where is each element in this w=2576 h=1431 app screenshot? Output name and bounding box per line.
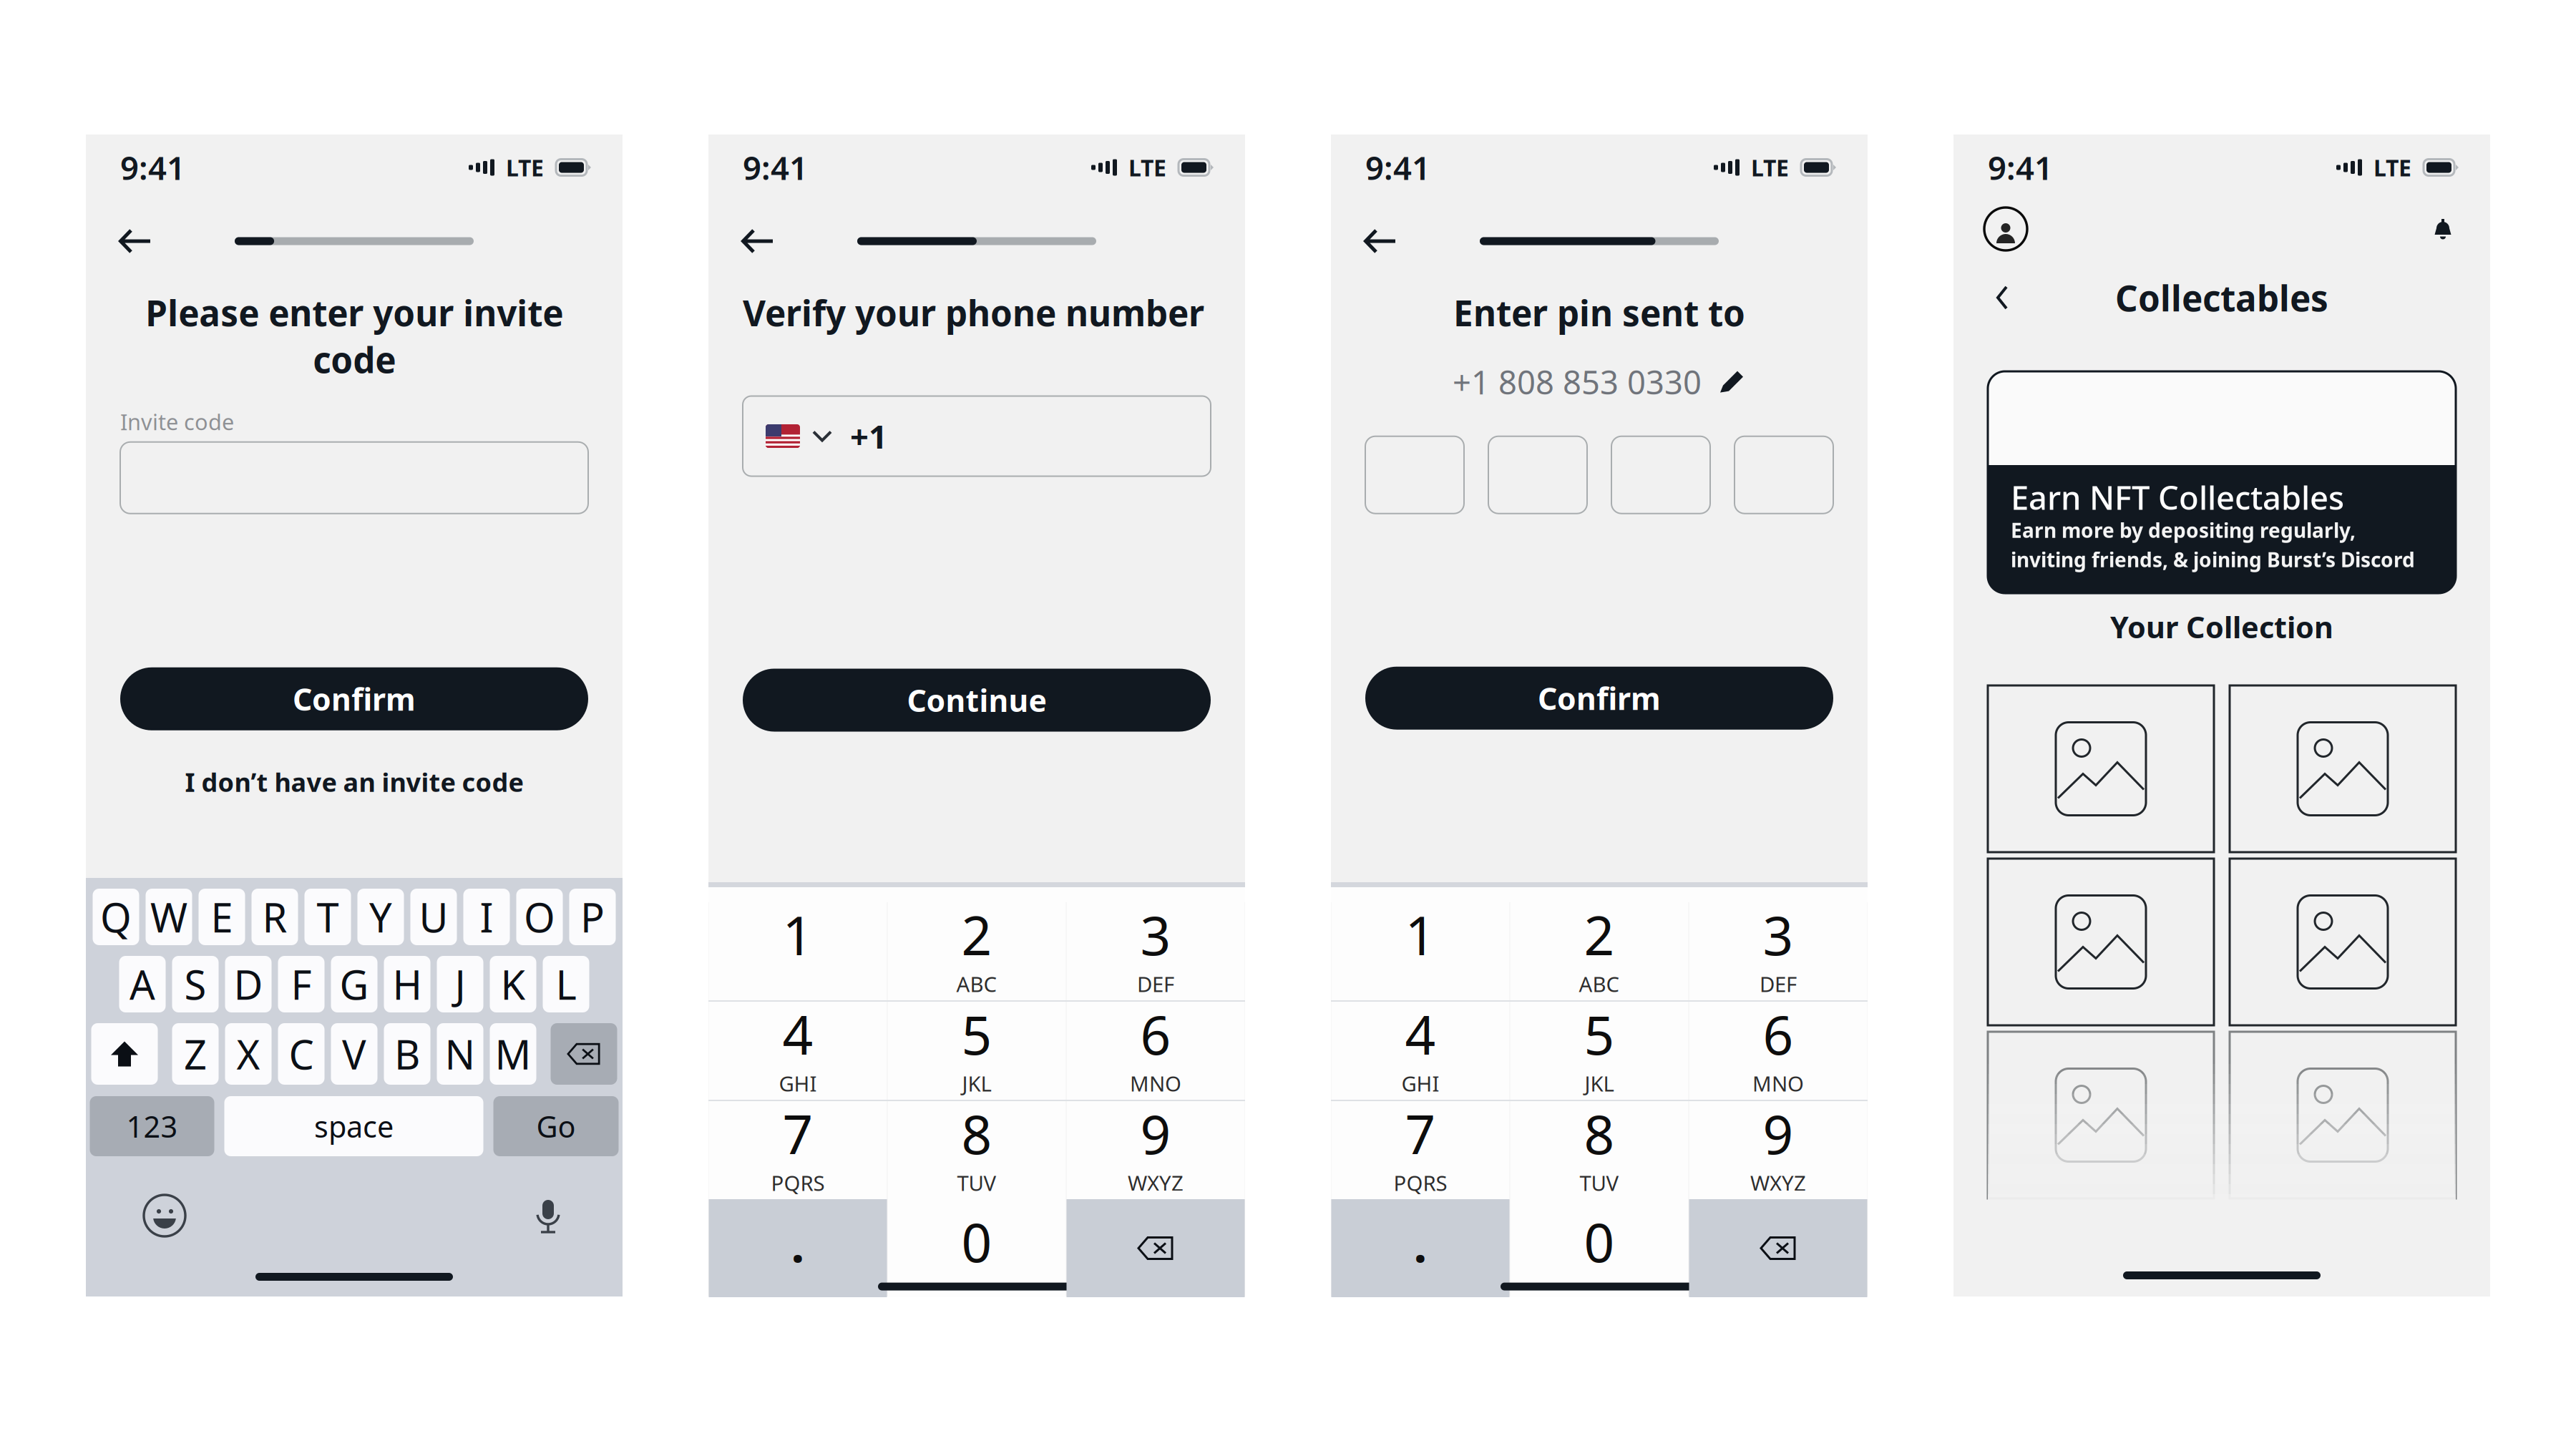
button[interactable]: Confirm (120, 667, 588, 730)
button[interactable]: 6 (1067, 1002, 1245, 1100)
staticText: 7 (782, 1098, 813, 1169)
staticText: L (556, 958, 576, 1011)
button[interactable]: Confirm (1365, 667, 1833, 730)
staticText: T (317, 890, 339, 944)
button[interactable]: Y (357, 889, 404, 945)
staticText: LTE (2373, 152, 2411, 183)
button[interactable]: A (119, 956, 166, 1012)
button[interactable]: 4 (1331, 1002, 1509, 1100)
button[interactable]: M (490, 1023, 536, 1085)
staticText: 5 (1584, 998, 1615, 1069)
staticText: 9:41 (1365, 146, 1430, 189)
button[interactable]: Profile (1984, 207, 2027, 250)
button[interactable]: I don’t have an invite code (120, 763, 588, 800)
staticText: PQRS (1394, 1169, 1447, 1197)
button[interactable]: Notifications (2426, 207, 2459, 250)
button[interactable]: T (304, 889, 351, 945)
button[interactable]: Dictation (532, 1195, 565, 1236)
button[interactable]: 5 (888, 1002, 1066, 1100)
button[interactable]: I (463, 889, 510, 945)
button[interactable]: O (516, 889, 563, 945)
button[interactable]: C (278, 1023, 325, 1085)
button[interactable]: Edit phone number (1719, 368, 1746, 395)
button[interactable]: W (146, 889, 192, 945)
button[interactable]: H (384, 956, 430, 1012)
button[interactable]: E (199, 889, 245, 945)
button[interactable]: 123 (90, 1096, 214, 1156)
button[interactable]: Q (93, 889, 139, 945)
staticText: E (211, 890, 233, 944)
button[interactable]: Back (110, 220, 160, 262)
button[interactable]: U (410, 889, 457, 945)
button[interactable]: 7 (1331, 1101, 1509, 1199)
button[interactable]: Delete (551, 1023, 617, 1085)
staticText: 9:41 (120, 146, 185, 189)
button[interactable]: B (384, 1023, 430, 1085)
button[interactable]: N (437, 1023, 483, 1085)
staticText: V (342, 1027, 366, 1081)
button[interactable]: Delete (1067, 1199, 1245, 1297)
button[interactable]: 9 (1067, 1101, 1245, 1199)
button[interactable]: Emoji (144, 1195, 185, 1236)
button[interactable]: 2 (1510, 902, 1688, 1000)
button[interactable]: space (224, 1096, 483, 1156)
staticText: 4 (1405, 998, 1436, 1069)
staticText: Confirm (293, 679, 416, 719)
button[interactable]: K (490, 956, 536, 1012)
button[interactable]: F (278, 956, 325, 1012)
button[interactable]: 8 (1510, 1101, 1688, 1199)
button[interactable]: 6 (1689, 1002, 1867, 1100)
staticText: S (184, 958, 206, 1011)
button[interactable]: Delete (1689, 1199, 1867, 1297)
staticText: 2 (1584, 899, 1615, 970)
staticText: 5 (961, 998, 992, 1069)
button[interactable]: 3 (1067, 902, 1245, 1000)
button[interactable]: Go (493, 1096, 619, 1156)
button[interactable]: L (543, 956, 589, 1012)
staticText: 9:41 (1988, 146, 2053, 189)
staticText: K (501, 958, 526, 1011)
button[interactable]: 3 (1689, 902, 1867, 1000)
button[interactable]: R (252, 889, 298, 945)
staticText: Enter pin sent to (1453, 289, 1745, 336)
button[interactable]: 0 (888, 1199, 1066, 1297)
button[interactable]: 8 (888, 1101, 1066, 1199)
button[interactable]: . (709, 1199, 887, 1297)
button[interactable]: Shift (91, 1023, 158, 1085)
staticText: 123 (126, 1107, 178, 1146)
button[interactable]: G (331, 956, 377, 1012)
staticText: Go (536, 1107, 576, 1146)
staticText: 6 (1140, 998, 1171, 1069)
button[interactable]: S (172, 956, 219, 1012)
button[interactable]: 4 (709, 1002, 887, 1100)
button[interactable]: . (1331, 1199, 1509, 1297)
button[interactable]: V (331, 1023, 377, 1085)
button[interactable]: Z (172, 1023, 219, 1085)
staticText: 1 (782, 899, 813, 970)
button[interactable]: 9 (1689, 1101, 1867, 1199)
button[interactable]: Continue (743, 669, 1211, 732)
staticText: JKL (1585, 1069, 1614, 1097)
button[interactable]: J (437, 956, 483, 1012)
button[interactable]: X (225, 1023, 272, 1085)
staticText: GHI (779, 1069, 817, 1097)
button[interactable]: 2 (888, 902, 1066, 1000)
button[interactable]: Select country (766, 409, 833, 464)
button[interactable]: 1 (1331, 902, 1509, 1000)
button[interactable]: 1 (709, 902, 887, 1000)
button[interactable]: Back (1355, 220, 1405, 262)
button[interactable]: 0 (1510, 1199, 1688, 1297)
staticText: MNO (1752, 1069, 1804, 1097)
button[interactable]: 7 (709, 1101, 887, 1199)
button[interactable]: 5 (1510, 1002, 1688, 1100)
staticText: inviting friends, & joining Burst’s Disc… (2011, 546, 2415, 573)
button[interactable]: D (225, 956, 272, 1012)
button[interactable]: Back (733, 220, 783, 262)
staticText: 3 (1140, 899, 1171, 970)
staticText: +1 808 853 0330 (1453, 360, 1702, 403)
button[interactable]: Back (1983, 278, 2021, 318)
staticText: 8 (1584, 1098, 1615, 1169)
staticText: WXYZ (1750, 1169, 1806, 1197)
button[interactable]: P (569, 889, 616, 945)
staticText: . (791, 1212, 805, 1276)
